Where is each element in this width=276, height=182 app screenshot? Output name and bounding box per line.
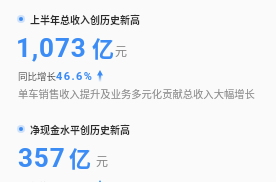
button[interactable]: 净现金水平创历史新高 — [17, 122, 130, 136]
staticText: 357 — [18, 143, 66, 173]
staticText: 亿 — [69, 141, 92, 173]
staticText: 净现金水平创历史新高 — [30, 122, 130, 136]
staticText: 单车销售收入提升及业务多元化贡献总收入大幅增长 — [18, 86, 255, 101]
staticText: 上半年总收入创历史新高 — [30, 12, 140, 26]
staticText: 1,073 — [16, 33, 87, 63]
staticText: 元 — [96, 152, 109, 169]
staticText: 元 — [115, 42, 128, 59]
button[interactable]: 上半年总收入创历史新高 — [17, 12, 140, 26]
staticText: 亿 — [92, 31, 115, 63]
staticText: 同比增长46.6% — [18, 69, 94, 83]
